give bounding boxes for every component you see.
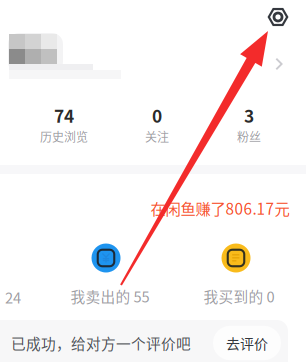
staticText: 关注 [145,128,169,145]
staticText: 3 [244,103,254,128]
staticText: 74 [54,103,74,128]
staticText: 已成功，给对方一个评价吧 [11,332,191,354]
staticText: 历史浏览 [40,128,88,145]
staticText: 粉丝 [237,128,261,145]
button[interactable]: 在闲鱼赚了806.17元 [146,193,293,223]
button[interactable]: 我卖出的 55 [60,240,152,306]
button[interactable]: Open profile [266,48,292,80]
staticText: 0 [152,103,162,128]
staticText: 我买到的 0 [203,285,274,307]
button[interactable]: 3 [221,98,277,150]
button[interactable]: 已成功，给对方一个评价吧 [0,322,290,362]
button[interactable]: Settings [260,0,295,34]
staticText: 我卖出的 55 [70,285,149,307]
button[interactable]: 我买到的 0 [190,240,282,306]
button[interactable]: 74 [24,98,104,150]
staticText: 在闲鱼赚了806.17元 [150,197,289,219]
staticText: 24 [5,286,21,308]
staticText: 去评价 [226,333,268,353]
button[interactable]: 0 [129,98,185,150]
